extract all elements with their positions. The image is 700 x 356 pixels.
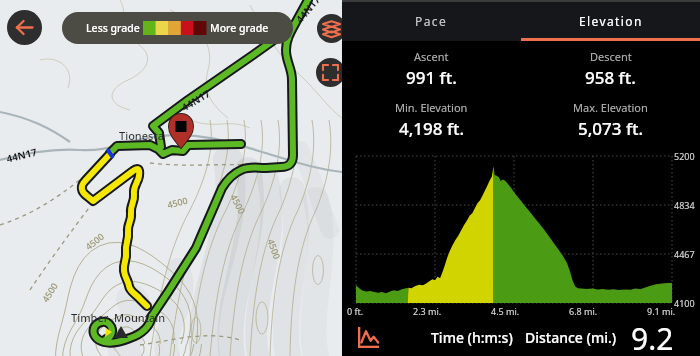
button[interactable]: Recenter map [316, 58, 345, 87]
staticText: 4500 [39, 280, 60, 304]
staticText: 5,073 ft. [578, 117, 644, 140]
staticText: 44N17 [5, 144, 39, 166]
staticText: Tionesta [119, 128, 164, 143]
button[interactable]: Pace [342, 0, 521, 41]
staticText: 6.8 mi. [569, 305, 598, 317]
staticText: 4500 [265, 237, 284, 261]
button[interactable]: Elevation [521, 0, 700, 41]
staticText: Elevation [579, 13, 643, 29]
staticText: 4100 [674, 297, 695, 309]
staticText: 2.3 mi. [413, 305, 442, 317]
staticText: 4834 [674, 199, 695, 211]
staticText: 4500 [166, 194, 189, 210]
staticText: 958 ft. [585, 66, 636, 89]
button[interactable]: Map layers [317, 14, 346, 43]
button[interactable]: Chart [354, 323, 382, 351]
staticText: 9.1 mi. [647, 305, 676, 317]
button[interactable]: Back [7, 10, 42, 45]
staticText: More grade [210, 21, 269, 35]
staticText: 4467 [674, 248, 695, 260]
button[interactable]: Less grade [62, 12, 293, 44]
staticText: 4,198 ft. [399, 117, 465, 140]
staticText: Pace [415, 13, 448, 29]
staticText: Time (h:m:s) [431, 328, 513, 347]
staticText: Less grade [86, 21, 140, 35]
staticText: 44N17 [292, 0, 324, 26]
staticText: 44N17 [179, 86, 213, 114]
staticText: Min. Elevation [395, 100, 468, 115]
staticText: 4500 [82, 230, 106, 252]
staticText: 4500 [228, 192, 249, 216]
staticText: 9.2 [631, 318, 674, 356]
staticText: 0 ft. [347, 305, 364, 317]
staticText: 4.5 mi. [491, 305, 520, 317]
staticText: Descent [590, 49, 632, 64]
staticText: Timber Mountain [71, 310, 166, 325]
staticText: Max. Elevation [573, 100, 648, 115]
staticText: Ascent [414, 49, 449, 64]
staticText: Distance (mi.) [525, 328, 617, 347]
staticText: 5200 [674, 150, 695, 162]
staticText: 991 ft. [406, 66, 457, 89]
